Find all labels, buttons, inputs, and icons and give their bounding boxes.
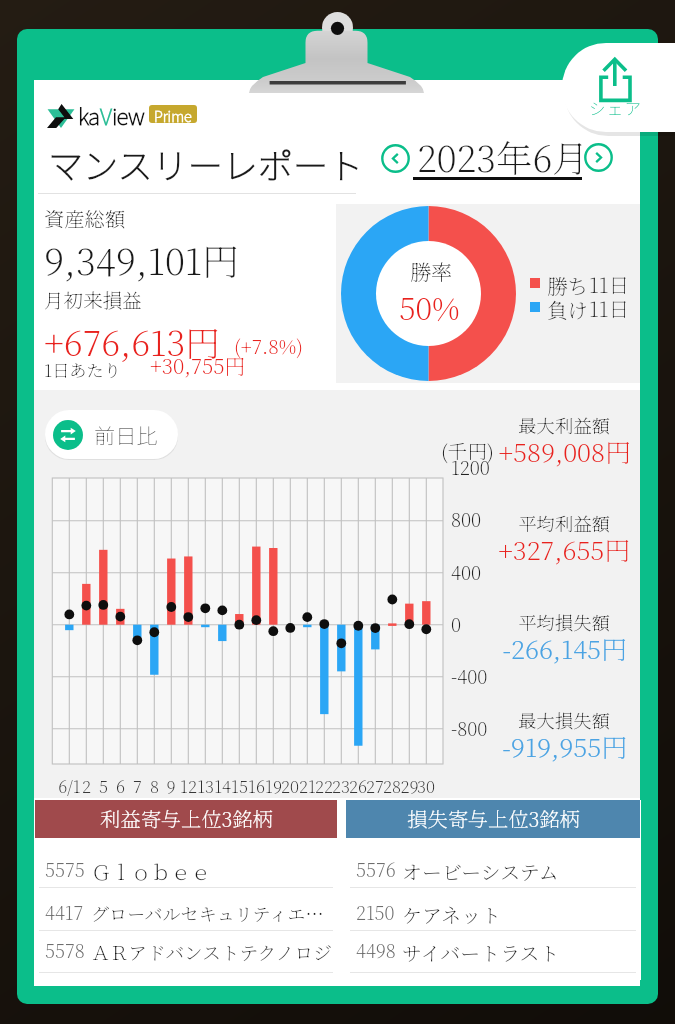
- staticText: 1日あたり: [44, 357, 121, 382]
- staticText: 損失寄与上位3銘柄: [407, 804, 580, 833]
- staticText: 13: [197, 774, 214, 798]
- staticText: ＡＲアドバンストテクノロジ: [91, 938, 332, 965]
- staticText: 0: [451, 611, 462, 638]
- staticText: 800: [451, 506, 482, 533]
- staticText: 勝率: [410, 256, 453, 286]
- staticText: 9,349,101円: [44, 233, 239, 286]
- staticText: -400: [451, 663, 488, 690]
- staticText: -919,955円: [502, 728, 627, 765]
- staticText: 4498: [356, 937, 396, 963]
- staticText: 9: [166, 774, 176, 798]
- button[interactable]: [346, 887, 640, 929]
- staticText: サイバートラスト: [402, 938, 560, 967]
- staticText: (千円): [441, 436, 494, 464]
- staticText: 2: [82, 774, 91, 798]
- staticText: -800: [451, 715, 488, 742]
- staticText: 1200: [451, 454, 490, 481]
- staticText: 5576: [356, 856, 396, 882]
- staticText: 月初来損益: [44, 285, 142, 313]
- staticText: 15: [231, 774, 248, 798]
- button[interactable]: [35, 839, 337, 888]
- staticText: 5575: [45, 856, 85, 882]
- staticText: シェア: [589, 96, 643, 120]
- button[interactable]: Previous month: [381, 144, 410, 173]
- staticText: iew: [112, 99, 144, 132]
- staticText: 12: [180, 774, 197, 798]
- staticText: 5578: [45, 937, 85, 963]
- staticText: 前日比: [94, 419, 158, 450]
- staticText: 400: [451, 559, 482, 586]
- staticText: 22: [315, 774, 333, 798]
- staticText: 4417: [45, 899, 84, 925]
- staticText: 14: [214, 774, 231, 798]
- staticText: (+7.8%): [234, 332, 304, 360]
- staticText: 23: [332, 774, 350, 798]
- staticText: 20: [281, 774, 299, 798]
- staticText: マンスリーレポート: [48, 138, 364, 189]
- staticText: 最大利益額: [518, 412, 610, 438]
- staticText: 27: [366, 774, 384, 798]
- staticText: 資産総額: [44, 204, 126, 233]
- staticText: 19: [265, 774, 282, 798]
- button[interactable]: [35, 930, 337, 973]
- staticText: 26: [349, 774, 367, 798]
- staticText: 8: [150, 774, 159, 798]
- staticText: 勝ち: [547, 270, 589, 300]
- staticText: +589,008円: [498, 433, 631, 470]
- staticText: +676,613円: [44, 316, 221, 366]
- staticText: 11日: [589, 293, 630, 323]
- staticText: 21: [299, 774, 316, 798]
- staticText: Prime: [154, 105, 192, 123]
- staticText: 30: [417, 774, 435, 798]
- staticText: 11日: [589, 269, 630, 299]
- staticText: 最大損失額: [518, 707, 610, 733]
- staticText: 16: [248, 774, 265, 798]
- staticText: 5: [99, 774, 108, 798]
- staticText: グローバルセキュリティエ…: [91, 900, 324, 926]
- button[interactable]: [35, 887, 337, 929]
- staticText: 29: [400, 774, 419, 798]
- staticText: 負け: [547, 294, 589, 324]
- button[interactable]: 前日比: [45, 410, 178, 459]
- button[interactable]: Share: [562, 43, 675, 132]
- staticText: V: [100, 99, 112, 132]
- staticText: 2150: [356, 899, 395, 925]
- staticText: ka: [78, 99, 100, 132]
- staticText: 6: [116, 774, 125, 798]
- staticText: 平均損失額: [518, 609, 610, 635]
- staticText: オービーシステム: [402, 857, 559, 886]
- staticText: +327,655円: [498, 531, 630, 568]
- staticText: 6/1: [58, 774, 81, 798]
- button[interactable]: [346, 930, 640, 973]
- staticText: -266,145円: [502, 630, 627, 667]
- staticText: 平均利益額: [518, 510, 610, 536]
- staticText: 28: [383, 774, 401, 798]
- button[interactable]: Next month: [584, 143, 613, 172]
- staticText: 7: [133, 774, 142, 798]
- staticText: +30,755円: [150, 350, 246, 380]
- staticText: 利益寄与上位3銘柄: [100, 804, 273, 833]
- staticText: ケアネット: [402, 900, 502, 929]
- staticText: 2023年6月: [417, 130, 589, 182]
- button[interactable]: [346, 839, 640, 888]
- staticText: 50%: [399, 285, 460, 329]
- staticText: Ｇｌｏｂｅｅ: [91, 857, 211, 886]
